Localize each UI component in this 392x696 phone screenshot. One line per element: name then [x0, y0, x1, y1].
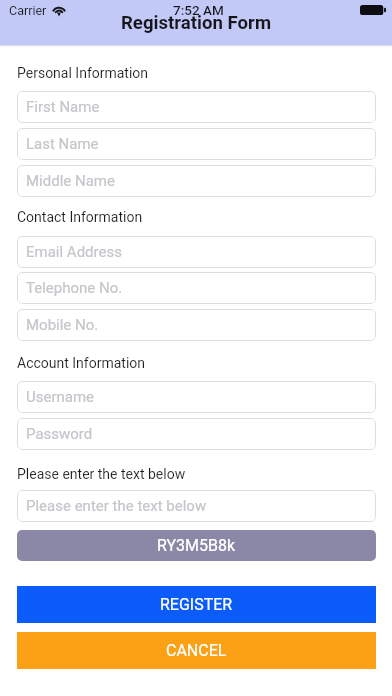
staticText: Username	[26, 388, 95, 406]
button[interactable]: Middle Name	[17, 165, 376, 197]
staticText: Last Name	[26, 135, 99, 153]
button[interactable]: Please enter the text below	[17, 490, 376, 522]
staticText: Account Information	[17, 355, 146, 371]
button[interactable]: Username	[17, 381, 376, 413]
button[interactable]: First Name	[17, 91, 376, 123]
button[interactable]: Telephone No.	[17, 272, 376, 304]
staticText: First Name	[26, 98, 100, 116]
staticText: Contact Information	[17, 209, 143, 225]
button[interactable]: REGISTER	[17, 586, 376, 623]
button[interactable]: Mobile No.	[17, 309, 376, 341]
staticText: Email Address	[26, 243, 122, 261]
staticText: Please enter the text below	[26, 497, 207, 515]
staticText: Middle Name	[26, 172, 115, 190]
staticText: Personal Information	[17, 65, 149, 81]
staticText: Registration Form	[121, 12, 271, 34]
staticText: CANCEL	[166, 641, 227, 660]
staticText: Mobile No.	[26, 316, 99, 334]
button[interactable]: Email Address	[17, 236, 376, 268]
staticText: Carrier	[9, 3, 47, 18]
button[interactable]: RY3M5B8k	[17, 530, 376, 561]
other: Battery full	[360, 5, 386, 15]
button[interactable]: Password	[17, 418, 376, 450]
staticText: Password	[26, 425, 93, 443]
staticText: RY3M5B8k	[157, 536, 236, 555]
staticText: REGISTER	[160, 595, 233, 614]
other: Wi-Fi signal	[51, 5, 67, 16]
button[interactable]: Last Name	[17, 128, 376, 160]
button[interactable]: CANCEL	[17, 632, 376, 669]
staticText: 7:52 AM	[173, 2, 224, 18]
staticText: Please enter the text below	[17, 466, 186, 482]
staticText: Telephone No.	[26, 279, 123, 297]
